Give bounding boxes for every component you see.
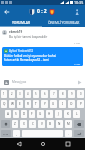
staticText: ÖNEMLİ YORUMLAR — [48, 20, 80, 24]
button[interactable]: L — [73, 110, 80, 118]
button[interactable]: 4 — [25, 90, 31, 98]
button[interactable]: V — [38, 120, 45, 128]
button[interactable]: Enter — [74, 130, 84, 137]
staticText: 0 : 2 — [37, 8, 47, 15]
button[interactable]: F — [29, 110, 35, 118]
button[interactable]: Z — [12, 120, 18, 128]
staticText: A — [7, 112, 9, 116]
staticText: Bu işi bir tanesi başarabilir — [9, 35, 48, 39]
button[interactable]: R — [25, 100, 31, 108]
button[interactable]: , — [13, 130, 20, 137]
button[interactable]: E — [17, 100, 23, 108]
button[interactable]: X — [20, 120, 27, 128]
button[interactable]: O — [68, 100, 75, 108]
staticText: E — [19, 102, 21, 106]
staticText: futan artık Romadaysa52 - ismi — [4, 58, 49, 62]
staticText: Q — [3, 102, 6, 106]
staticText: W — [11, 102, 14, 106]
button[interactable]: Send — [74, 77, 84, 87]
button[interactable]: YORUMLAR — [0, 18, 42, 26]
staticText: B — [49, 122, 52, 126]
staticText: 3 — [19, 92, 21, 96]
staticText: . — [68, 132, 69, 136]
staticText: V — [41, 122, 43, 126]
staticText: 4 — [27, 92, 29, 96]
staticText: T — [35, 102, 37, 106]
button[interactable]: D — [21, 110, 27, 118]
staticText: 6 — [44, 92, 46, 96]
button[interactable]: ÖNEMLİ YORUMLAR — [42, 18, 85, 26]
button[interactable]: I — [59, 100, 66, 108]
button[interactable]: 2 — [9, 90, 15, 98]
staticText: 8 — [62, 92, 64, 96]
staticText: G — [39, 112, 42, 116]
button[interactable]: A — [5, 110, 11, 118]
button[interactable]: J — [55, 110, 62, 118]
button[interactable]: Q — [1, 100, 7, 108]
button[interactable]: B — [47, 120, 54, 128]
staticText: F — [31, 112, 33, 116]
button[interactable]: S — [13, 110, 19, 118]
staticText: I — [62, 102, 64, 106]
button[interactable]: 1 — [1, 90, 7, 98]
staticText: R — [27, 102, 29, 106]
button[interactable]: P — [77, 100, 84, 108]
button[interactable]: 5 — [33, 90, 39, 98]
button[interactable]: Y — [41, 100, 48, 108]
staticText: 2 — [11, 92, 13, 96]
staticText: 11:24 — [74, 62, 81, 65]
button[interactable]: H — [46, 110, 53, 118]
staticText: ekmek19 — [9, 30, 23, 34]
staticText: Aykut Yeniceri412 — [9, 49, 33, 53]
staticText: P — [80, 102, 82, 106]
button[interactable]: 0 — [77, 90, 84, 98]
staticText: 1 — [3, 92, 5, 96]
button[interactable]: Shift — [1, 120, 10, 128]
button[interactable]: T — [33, 100, 39, 108]
button[interactable]: C — [29, 120, 36, 128]
button[interactable]: Home — [36, 138, 49, 150]
staticText: U — [52, 102, 55, 106]
staticText: M — [67, 122, 70, 126]
staticText: S — [15, 112, 17, 116]
button[interactable]: 9 — [68, 90, 75, 98]
staticText: Bütün futbol en iyi oyuncudur bahsi — [4, 54, 56, 58]
staticText: 7 — [53, 92, 55, 96]
button[interactable]: 3 — [17, 90, 23, 98]
button[interactable]: 6 — [41, 90, 48, 98]
staticText: 5 — [35, 92, 37, 96]
staticText: Y — [44, 102, 46, 106]
staticText: , — [16, 132, 17, 136]
button[interactable]: Add friend — [71, 5, 84, 18]
button[interactable]: . — [65, 130, 72, 137]
button[interactable]: ?123 — [1, 130, 11, 137]
staticText: ?123 — [3, 132, 9, 135]
button[interactable]: Back — [0, 5, 13, 18]
staticText: YORUMLAR — [12, 20, 30, 24]
staticText: J — [58, 112, 59, 116]
button[interactable]: G — [37, 110, 44, 118]
staticText: 0 — [80, 92, 82, 96]
button[interactable]: N — [56, 120, 63, 128]
button[interactable]: M — [65, 120, 72, 128]
button[interactable]: 7 — [50, 90, 57, 98]
button[interactable]: Backspace — [74, 120, 84, 128]
staticText: 9 — [71, 92, 73, 96]
staticText: C — [32, 122, 34, 126]
button[interactable]: U — [50, 100, 57, 108]
staticText: L — [76, 112, 78, 116]
staticText: Mesaj yaz — [12, 80, 27, 84]
button[interactable]: Recents — [61, 138, 74, 150]
button[interactable]: Add photo — [2, 78, 10, 86]
staticText: 10:35 — [74, 0, 84, 5]
staticText: N — [58, 122, 61, 126]
staticText: O — [70, 102, 73, 106]
staticText: D — [23, 112, 26, 116]
button[interactable]: 8 — [59, 90, 66, 98]
staticText: 11:21 — [74, 41, 81, 44]
button[interactable]: K — [64, 110, 71, 118]
staticText: Z — [14, 122, 16, 126]
button[interactable]: W — [9, 100, 15, 108]
button[interactable]: Back — [12, 138, 25, 150]
